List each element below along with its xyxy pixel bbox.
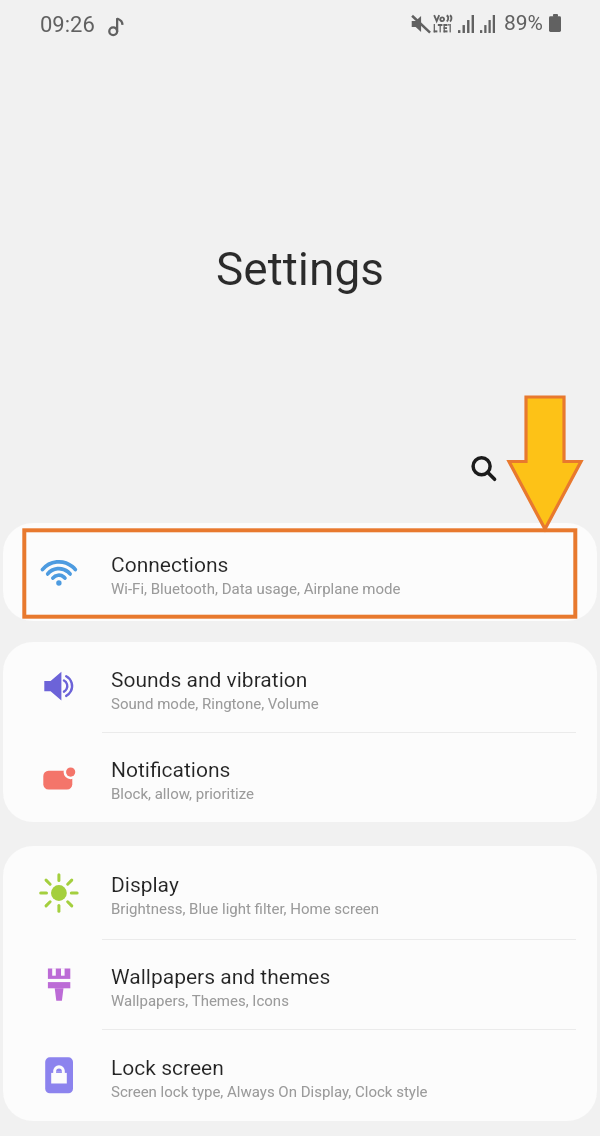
staticText: Block, allow, prioritize [111,785,254,803]
staticText: Wi-Fi, Bluetooth, Data usage, Airplane m… [111,580,401,598]
staticText: Wallpapers and themes [111,965,331,990]
staticText: Lock screen [111,1056,224,1081]
staticText: Settings [0,242,600,296]
staticText: Wallpapers, Themes, Icons [111,992,289,1010]
button[interactable]: Lock screen [3,1029,597,1121]
button[interactable]: Sounds and vibration [3,642,597,732]
staticText: Brightness, Blue light filter, Home scre… [111,900,380,918]
staticText: Display [111,873,179,898]
button[interactable]: Connections [3,523,597,621]
button[interactable]: Display [3,846,597,939]
staticText: Notifications [111,758,231,783]
staticText: 09:26 [40,12,95,38]
staticText: 89% [504,11,543,36]
staticText: Sounds and vibration [111,668,308,693]
button[interactable]: Search [460,445,504,489]
button[interactable]: Wallpapers and themes [3,939,597,1029]
staticText: Screen lock type, Always On Display, Clo… [111,1083,428,1101]
staticText: Connections [111,553,229,578]
staticText: Sound mode, Ringtone, Volume [111,695,319,713]
button[interactable]: Notifications [3,732,597,822]
